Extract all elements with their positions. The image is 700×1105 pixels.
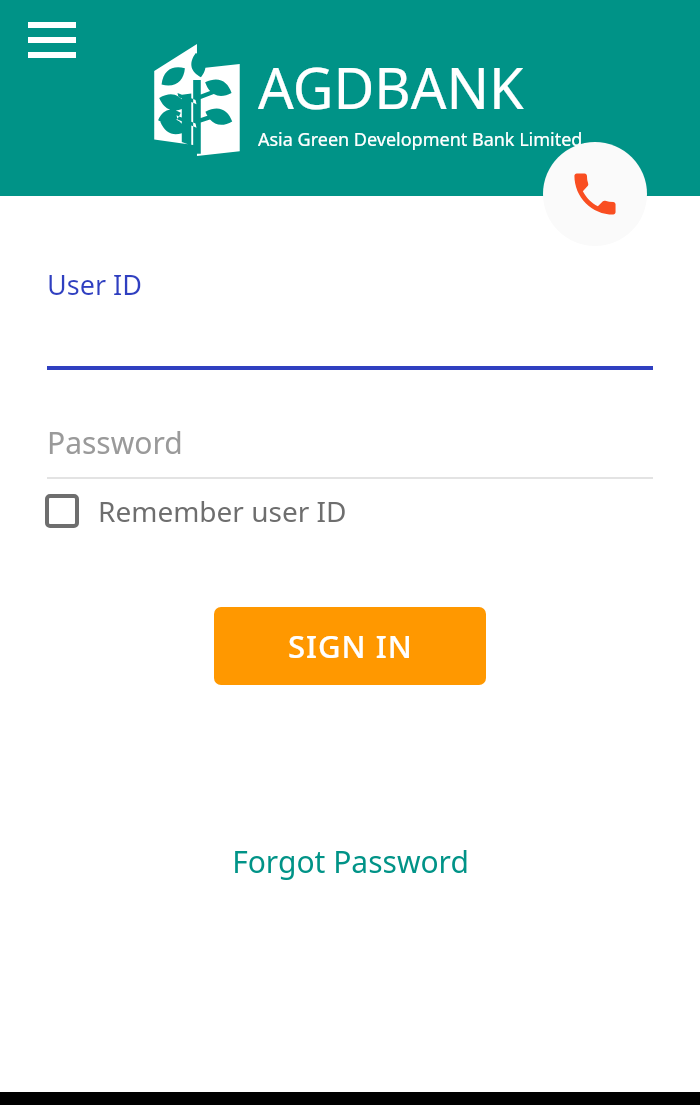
button[interactable]: Password bbox=[0, 372, 700, 482]
staticText: Password bbox=[47, 422, 183, 463]
staticText: Forgot Password bbox=[232, 841, 469, 882]
staticText: Remember user ID bbox=[98, 492, 347, 530]
button[interactable]: User ID bbox=[0, 196, 700, 372]
button[interactable]: Call bbox=[543, 142, 647, 246]
button[interactable]: Forgot Password bbox=[220, 835, 481, 888]
staticText: Asia Green Development Bank Limited. bbox=[258, 127, 588, 152]
staticText: User ID bbox=[47, 266, 142, 303]
button[interactable]: SIGN IN bbox=[214, 607, 486, 685]
button[interactable]: Remember user ID bbox=[42, 482, 347, 540]
staticText: AGDBANK bbox=[258, 49, 524, 125]
staticText: SIGN IN bbox=[288, 625, 413, 667]
button[interactable]: Menu bbox=[16, 12, 88, 68]
